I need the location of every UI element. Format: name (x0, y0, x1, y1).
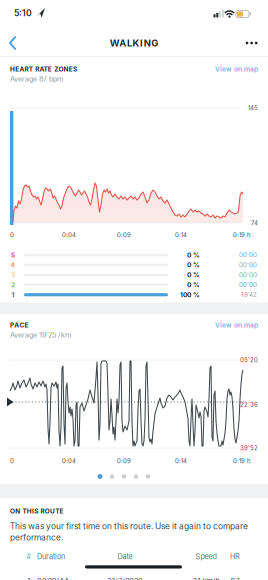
staticText: 0 % (187, 271, 200, 279)
staticText: 0:19 h (233, 231, 251, 239)
staticText: 5:10 (14, 8, 32, 18)
staticText: HR (230, 552, 240, 561)
staticText: Speed (195, 552, 216, 561)
staticText: Date (117, 552, 132, 561)
staticText: 100 % (180, 291, 200, 299)
staticText: 00'00 (239, 261, 257, 269)
staticText: 0:14 (175, 457, 187, 465)
button[interactable]: View on map (188, 64, 258, 74)
staticText: 2 (11, 281, 15, 289)
staticText: 0 (10, 457, 14, 465)
staticText: 3.1 km/h (192, 577, 219, 580)
staticText: 00'00 (239, 281, 257, 289)
button[interactable]: Date (103, 552, 147, 561)
staticText: WALKING (110, 37, 158, 49)
staticText: Average 19'25 /km (10, 331, 71, 339)
staticText: 87 (230, 577, 239, 580)
staticText: HEART RATE ZONES (10, 65, 77, 73)
staticText: View on map (215, 321, 258, 329)
staticText: View on map (215, 65, 258, 73)
staticText: 0:04 (62, 457, 76, 465)
staticText: 00'19'44 (37, 577, 69, 580)
staticText: 0 (10, 231, 14, 239)
staticText: # (26, 552, 31, 561)
staticText: 0:04 (62, 231, 76, 239)
staticText: Average 87 bpm (10, 75, 63, 83)
staticText: 3 (11, 271, 15, 279)
staticText: 00'00 (239, 271, 257, 279)
staticText: 00'00 (239, 251, 257, 259)
staticText: 0:14 (175, 231, 187, 239)
staticText: 0:19 h (233, 457, 251, 465)
button[interactable]: View on map (188, 320, 258, 330)
staticText: 31/7/2020 (107, 577, 143, 580)
staticText: 19'42 (241, 291, 257, 298)
staticText: 05'20 (240, 356, 258, 364)
button[interactable]: More (243, 32, 261, 54)
button[interactable]: Back (4, 32, 26, 54)
staticText: This was your first time on this route. … (10, 521, 248, 542)
staticText: 4 (10, 261, 15, 269)
staticText: 145 (248, 104, 258, 112)
staticText: 0:09 (117, 231, 131, 239)
staticText: Duration (37, 552, 65, 561)
staticText: 74 (251, 219, 258, 227)
staticText: 1 (11, 291, 14, 299)
staticText: 1 (27, 577, 30, 580)
staticText: 0 % (187, 261, 200, 269)
staticText: 39'52 (240, 444, 258, 452)
staticText: 0 % (187, 251, 200, 259)
staticText: 5 (11, 251, 15, 259)
staticText: 0:09 (117, 457, 131, 465)
staticText: 0 % (187, 281, 200, 289)
staticText: PACE (10, 321, 29, 329)
staticText: 22'36 (240, 401, 258, 408)
staticText: ON THIS ROUTE (10, 507, 63, 515)
